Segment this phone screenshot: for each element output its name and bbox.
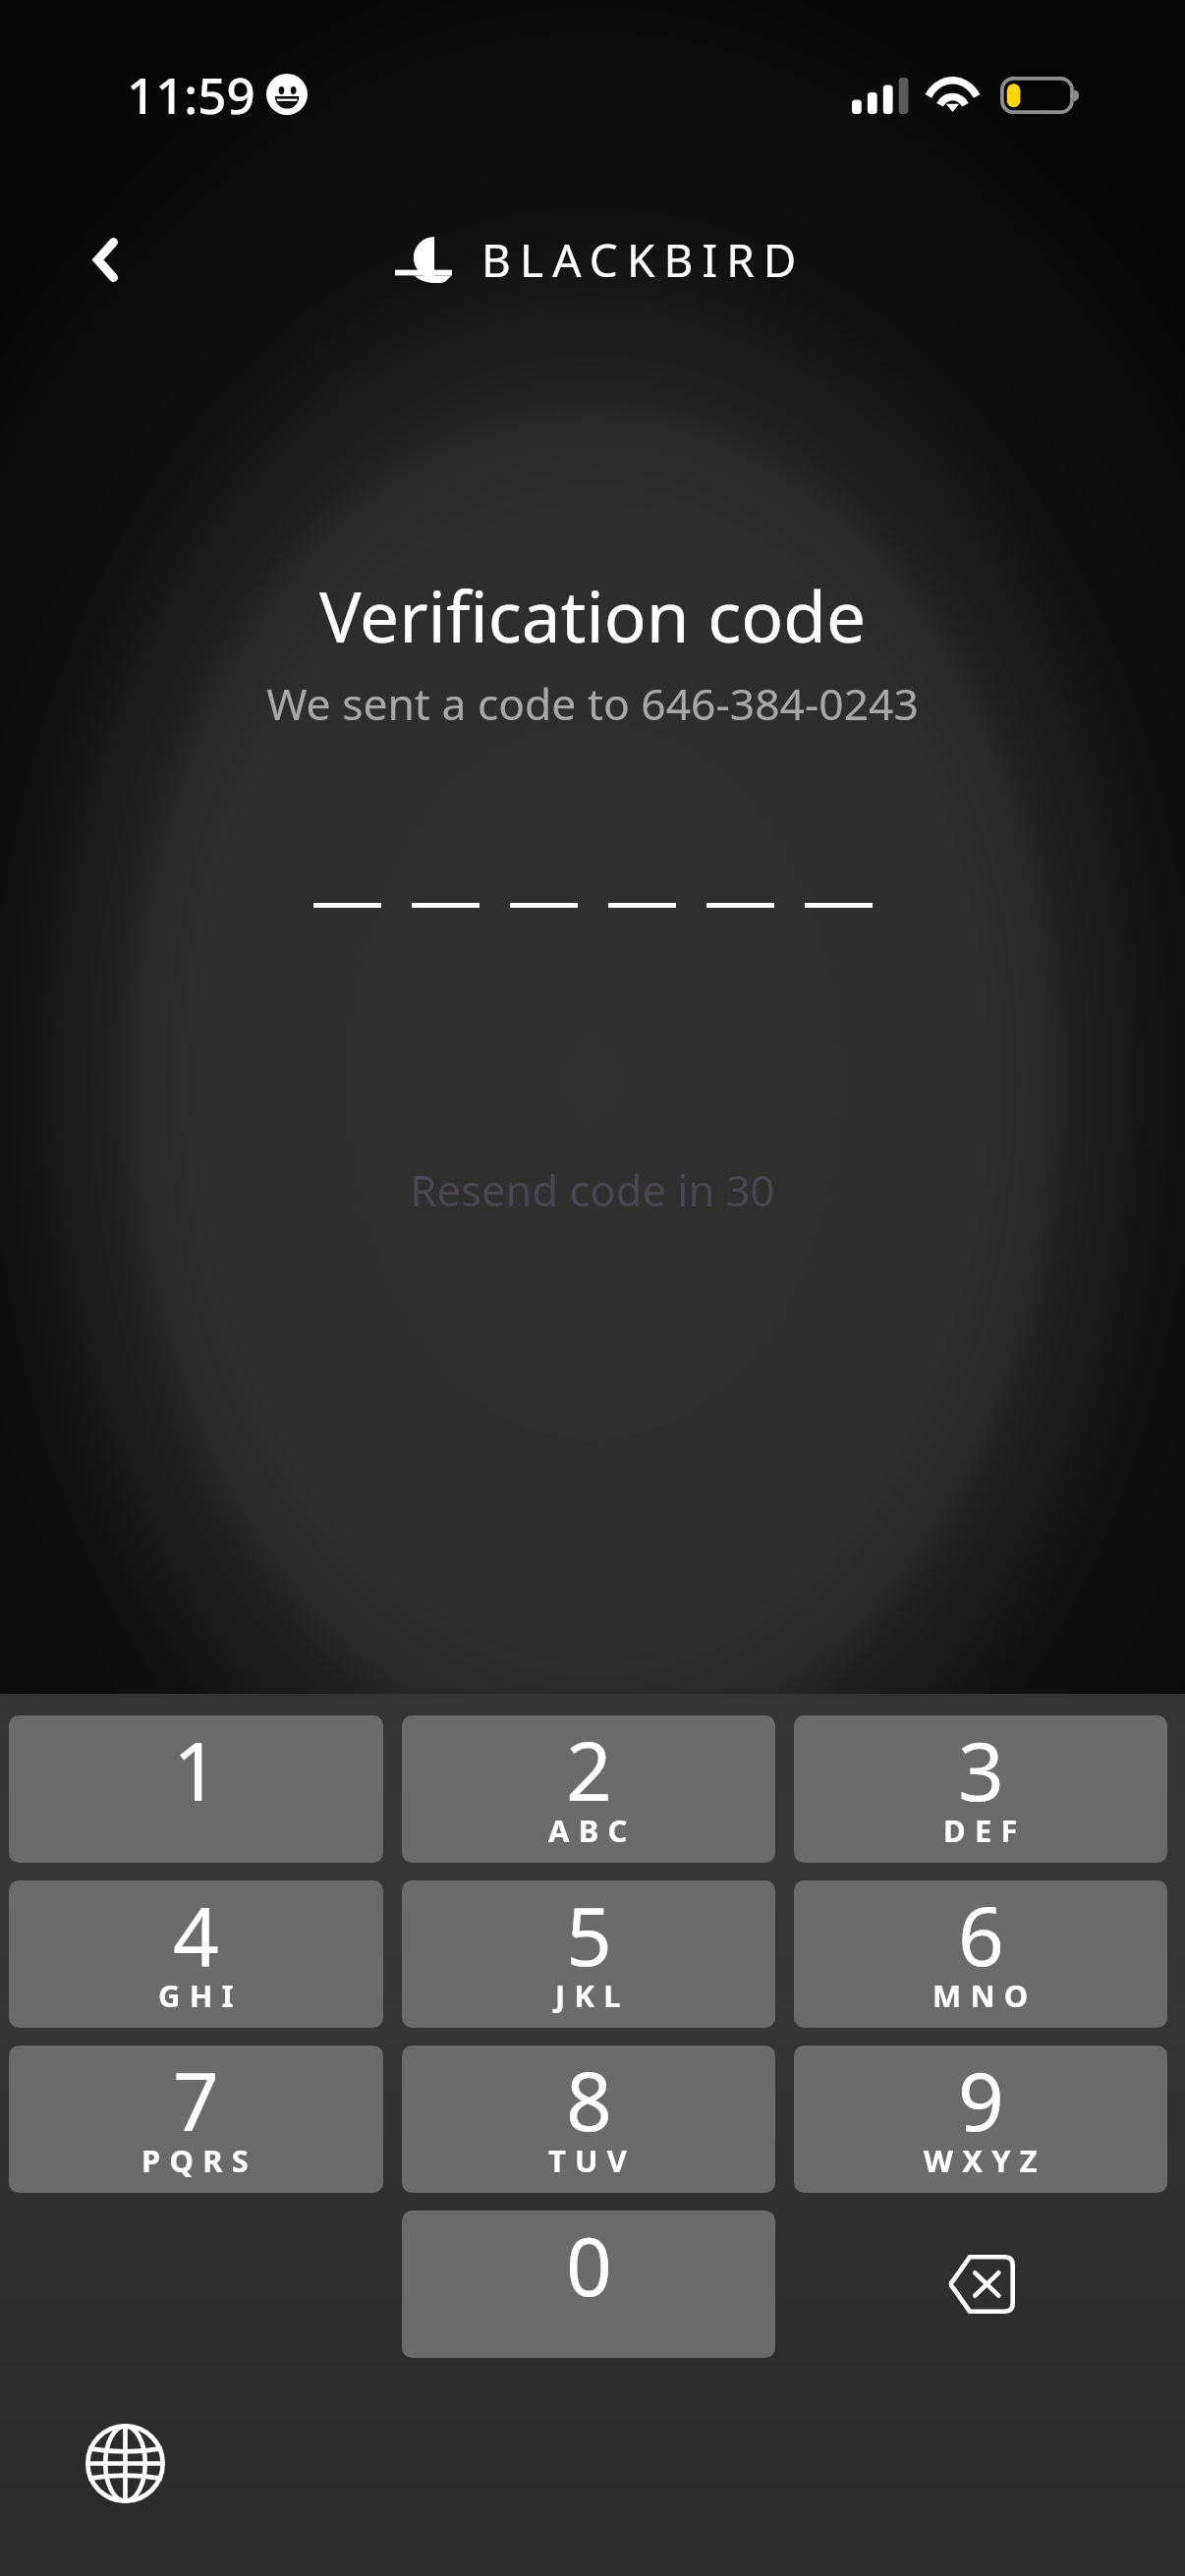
staticText: 5 (566, 1880, 612, 1989)
button[interactable]: 1 (9, 1715, 383, 1863)
staticText: DEF (943, 1810, 1027, 1851)
button[interactable]: 0 (402, 2211, 775, 2358)
staticText: JKL (555, 1975, 630, 2016)
staticText: 7 (173, 2045, 219, 2155)
button[interactable]: Backspace (794, 2211, 1167, 2358)
button[interactable]: 4 (9, 1880, 383, 2028)
staticText: We sent a code to 646-384-0243 (0, 674, 1185, 733)
button[interactable]: Change language (85, 2424, 165, 2503)
button[interactable]: 8 (402, 2045, 775, 2193)
button[interactable]: 5 (402, 1880, 775, 2028)
button[interactable]: Back (67, 215, 143, 304)
staticText: TUV (548, 2140, 637, 2181)
button[interactable]: 6 (794, 1880, 1167, 2028)
staticText: Verification code (0, 568, 1185, 663)
button[interactable]: 2 (402, 1715, 775, 1863)
staticText: 4 (173, 1880, 219, 1989)
staticText: 1 (173, 1715, 219, 1824)
staticText: 2 (566, 1715, 612, 1824)
staticText: Resend code in 30 (0, 1160, 1185, 1218)
staticText: BLACKBIRD (481, 229, 806, 291)
staticText: 8 (566, 2045, 612, 2155)
staticText: GHI (158, 1975, 243, 2016)
staticText: 3 (958, 1715, 1004, 1824)
button[interactable]: 7 (9, 2045, 383, 2193)
staticText: 11:59 (127, 60, 255, 128)
staticText: WXYZ (924, 2140, 1046, 2181)
staticText: 9 (958, 2045, 1004, 2155)
staticText: MNO (932, 1975, 1038, 2016)
staticText: 0 (566, 2211, 612, 2320)
staticText: PQRS (141, 2140, 258, 2181)
button[interactable]: 3 (794, 1715, 1167, 1863)
staticText: ABC (548, 1810, 637, 1851)
button[interactable]: 9 (794, 2045, 1167, 2193)
staticText: 6 (958, 1880, 1004, 1989)
